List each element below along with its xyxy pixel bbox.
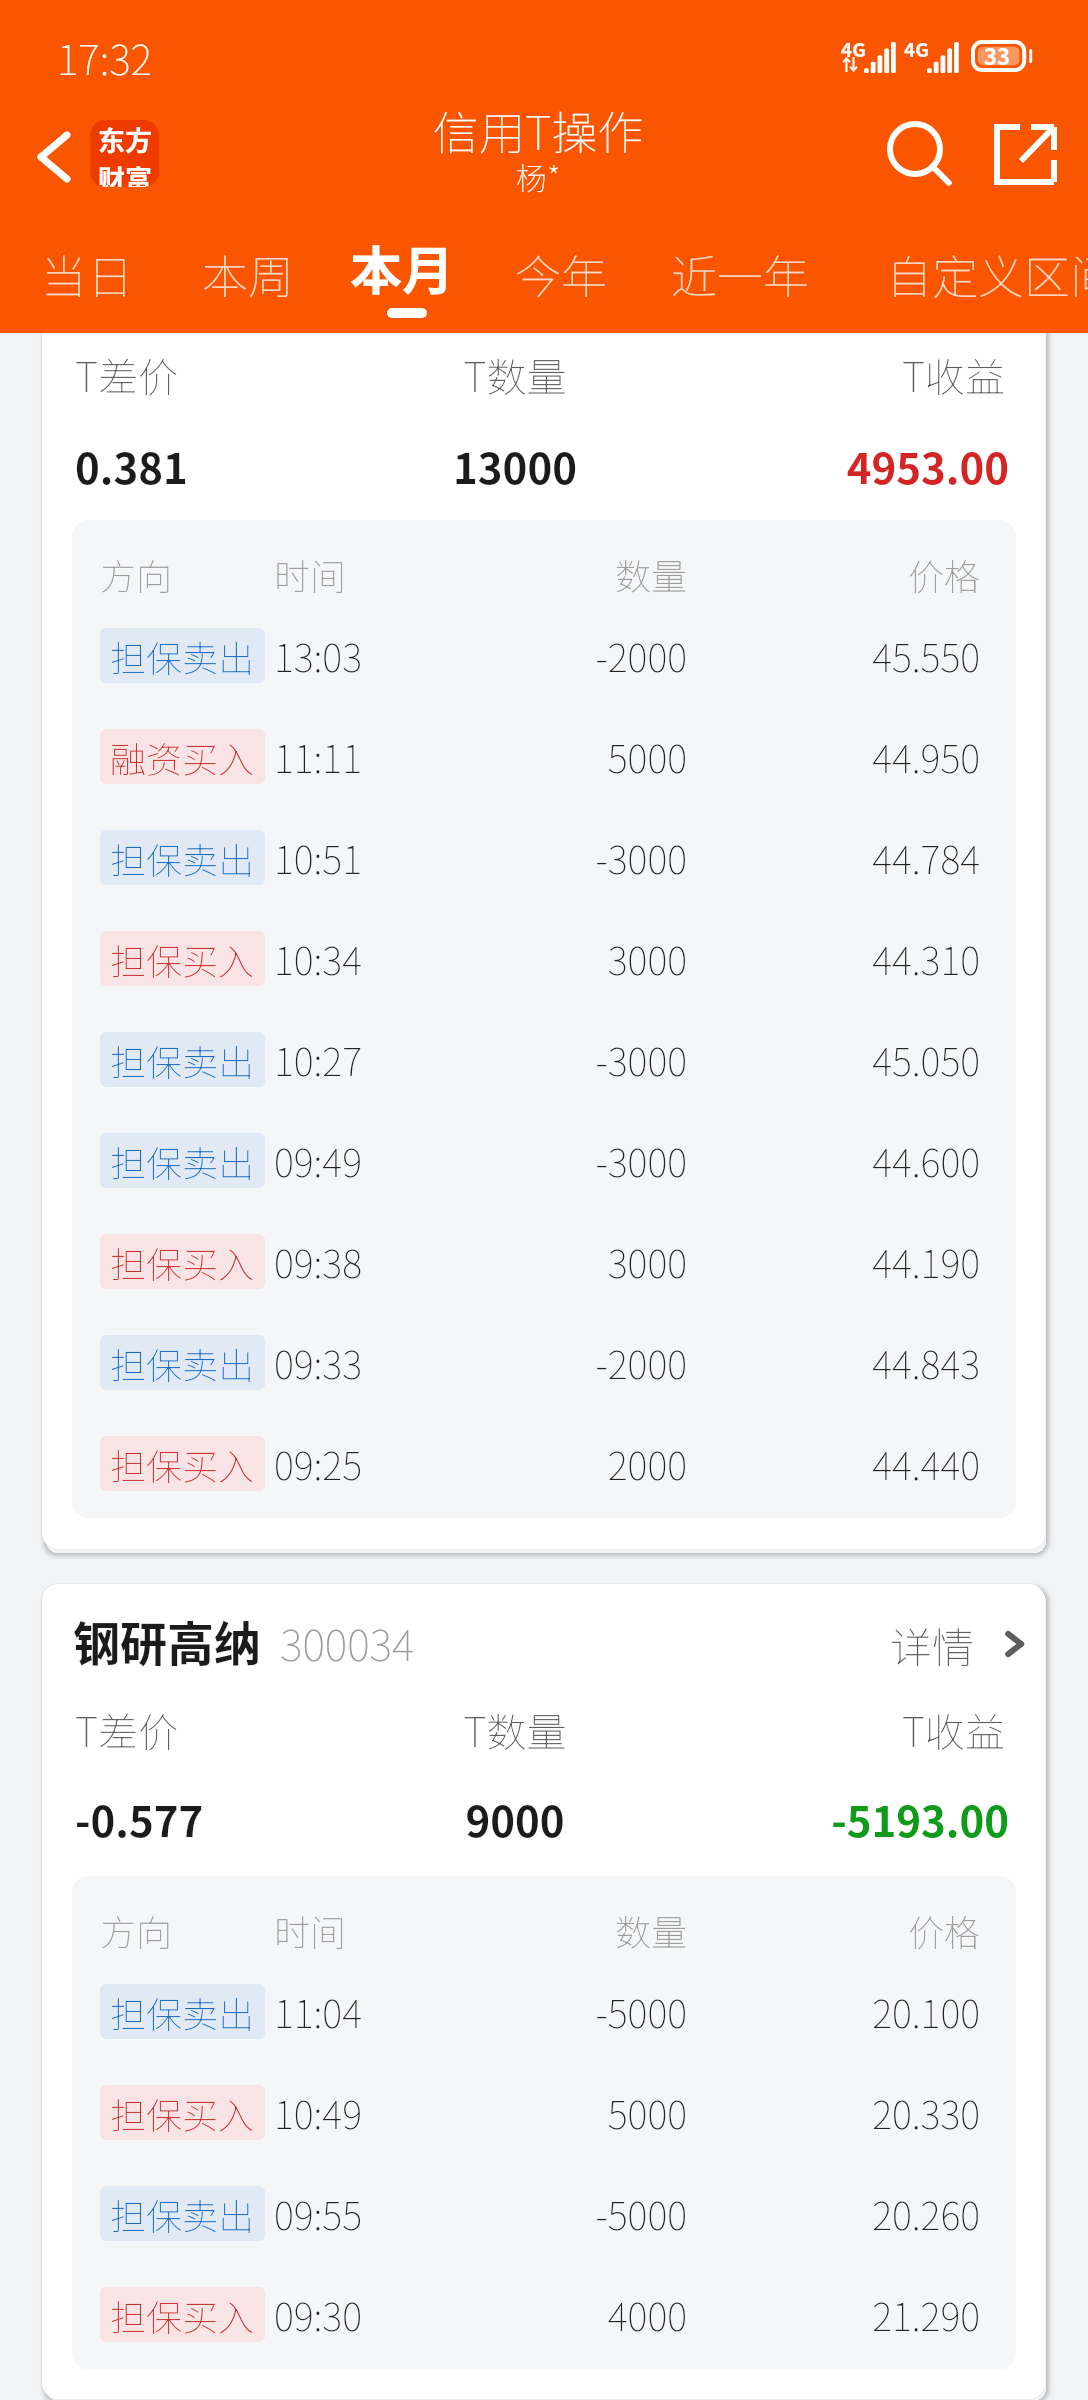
button[interactable]: 融资买入: [100, 706, 980, 807]
staticText: 09:30: [274, 2287, 454, 2342]
staticText: 33: [984, 39, 1010, 71]
staticText: T数量: [415, 346, 615, 404]
staticText: 信用T操作: [433, 97, 644, 164]
staticText: 13:03: [274, 628, 454, 683]
staticText: -5000: [454, 1984, 687, 2039]
staticText: 本月: [350, 230, 455, 305]
staticText: 44.843: [687, 1335, 980, 1390]
staticText: -0.577: [75, 1788, 204, 1849]
staticText: 44.440: [687, 1436, 980, 1491]
staticText: 11:11: [274, 729, 454, 784]
button[interactable]: 担保买入: [100, 2264, 980, 2365]
staticText: 价格: [687, 548, 980, 600]
staticText: 详情: [890, 1614, 975, 1675]
staticText: T差价: [75, 1701, 178, 1759]
staticText: 3000: [454, 1234, 687, 1289]
button[interactable]: Search: [875, 100, 957, 200]
staticText: -3000: [454, 1032, 687, 1087]
button[interactable]: 担保卖出: [100, 1961, 980, 2062]
button[interactable]: 担保买入: [100, 2062, 980, 2163]
staticText: 5000: [454, 2085, 687, 2140]
staticText: T收益: [805, 346, 1005, 404]
staticText: -2000: [454, 628, 687, 683]
staticText: 4G: [841, 35, 866, 63]
staticText: 9000: [365, 1788, 665, 1849]
staticText: 担保买入: [110, 1438, 255, 1490]
staticText: -3000: [454, 830, 687, 885]
staticText: 4G: [904, 35, 929, 63]
staticText: 今年: [515, 241, 607, 308]
staticText: 自定义区间: [886, 241, 1088, 308]
button[interactable]: Back: [18, 116, 90, 198]
staticText: 10:34: [274, 931, 454, 986]
staticText: 数量: [454, 1904, 687, 1956]
staticText: T差价: [75, 346, 178, 404]
staticText: 20.100: [687, 1984, 980, 2039]
staticText: 担保卖出: [110, 1034, 255, 1086]
staticText: 担保卖出: [110, 2188, 255, 2240]
staticText: 东方: [98, 120, 152, 159]
staticText: 09:33: [274, 1335, 454, 1390]
staticText: 0.381: [75, 435, 188, 496]
button[interactable]: 本月: [350, 222, 1088, 333]
button[interactable]: 担保卖出: [100, 1009, 980, 1110]
staticText: 担保卖出: [110, 832, 255, 884]
staticText: 时间: [274, 1904, 454, 1956]
button[interactable]: 担保卖出: [100, 2163, 980, 2264]
button[interactable]: 担保买入: [100, 908, 980, 1009]
staticText: 方向: [100, 548, 274, 600]
staticText: 5000: [454, 729, 687, 784]
staticText: 担保卖出: [110, 630, 255, 682]
staticText: -3000: [454, 1133, 687, 1188]
button[interactable]: 担保卖出: [100, 1312, 980, 1413]
staticText: 担保买入: [110, 1236, 255, 1288]
staticText: T数量: [415, 1701, 615, 1759]
staticText: 担保买入: [110, 933, 255, 985]
staticText: 担保卖出: [110, 1986, 255, 2038]
staticText: T收益: [805, 1701, 1005, 1759]
button[interactable]: 担保买入: [100, 1413, 980, 1514]
staticText: 方向: [100, 1904, 274, 1956]
staticText: 09:38: [274, 1234, 454, 1289]
staticText: 当日: [41, 241, 133, 308]
staticText: 10:51: [274, 830, 454, 885]
staticText: 09:49: [274, 1133, 454, 1188]
staticText: 担保卖出: [110, 1337, 255, 1389]
staticText: 300034: [280, 1611, 415, 1673]
staticText: 担保卖出: [110, 1135, 255, 1187]
staticText: 45.550: [687, 628, 980, 683]
staticText: ⇅: [842, 51, 859, 74]
staticText: 44.310: [687, 931, 980, 986]
staticText: 融资买入: [110, 731, 255, 783]
button[interactable]: 自定义区间: [886, 222, 1088, 333]
staticText: 杨*: [516, 154, 561, 199]
staticText: 21.290: [687, 2287, 980, 2342]
staticText: 担保买入: [110, 2087, 255, 2139]
staticText: 44.950: [687, 729, 980, 784]
staticText: 17:32: [57, 27, 152, 86]
button[interactable]: Share: [985, 114, 1067, 188]
staticText: 10:27: [274, 1032, 454, 1087]
staticText: -2000: [454, 1335, 687, 1390]
button[interactable]: 担保卖出: [100, 605, 980, 706]
button[interactable]: 担保卖出: [100, 807, 980, 908]
button[interactable]: 详情: [890, 1611, 1032, 1677]
button[interactable]: 担保买入: [100, 1211, 980, 1312]
button[interactable]: 本周: [202, 222, 1088, 333]
button[interactable]: 近一年: [671, 222, 1088, 333]
staticText: 44.784: [687, 830, 980, 885]
staticText: 财富: [98, 159, 152, 187]
staticText: 10:49: [274, 2085, 454, 2140]
staticText: 3000: [454, 931, 687, 986]
staticText: 09:25: [274, 1436, 454, 1491]
button[interactable]: 当日: [41, 222, 1088, 333]
staticText: 担保买入: [110, 2289, 255, 2341]
staticText: 13000: [365, 435, 665, 496]
staticText: 09:55: [274, 2186, 454, 2241]
staticText: 44.190: [687, 1234, 980, 1289]
staticText: 近一年: [671, 241, 809, 308]
staticText: 2000: [454, 1436, 687, 1491]
button[interactable]: 今年: [515, 222, 1088, 333]
button[interactable]: 担保卖出: [100, 1110, 980, 1211]
staticText: 20.330: [687, 2085, 980, 2140]
